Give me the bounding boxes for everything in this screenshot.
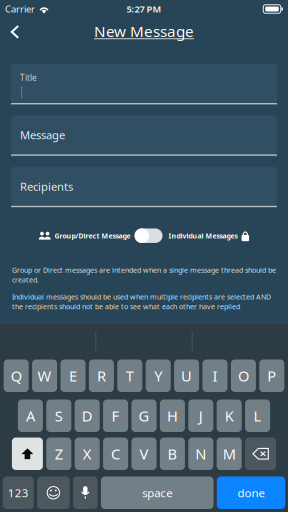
button[interactable]: M: [217, 437, 242, 470]
staticText: W: [38, 366, 52, 386]
staticText: C: [111, 444, 120, 464]
button[interactable]: 123: [3, 476, 34, 509]
staticText: Individual messages should be used when …: [12, 292, 271, 311]
button[interactable]: F: [103, 399, 128, 432]
button[interactable]: [37, 476, 70, 509]
staticText: M: [223, 444, 236, 464]
button[interactable]: A: [18, 399, 43, 432]
staticText: U: [181, 366, 192, 386]
button[interactable]: G: [131, 399, 156, 432]
button[interactable]: U: [174, 359, 199, 392]
staticText: Recipients: [20, 179, 73, 194]
staticText: D: [82, 406, 93, 426]
button[interactable]: K: [217, 399, 242, 432]
button[interactable]: done: [217, 476, 285, 509]
staticText: A: [26, 406, 35, 426]
button[interactable]: [245, 437, 276, 470]
staticText: T: [126, 366, 134, 386]
button[interactable]: S: [46, 399, 71, 432]
button[interactable]: L: [245, 399, 270, 432]
staticText: 123: [8, 485, 29, 500]
button[interactable]: T: [117, 359, 142, 392]
staticText: J: [199, 406, 203, 426]
staticText: Title: [20, 72, 37, 83]
button[interactable]: D: [75, 399, 100, 432]
staticText: space: [142, 485, 172, 500]
button[interactable]: C: [103, 437, 128, 470]
button[interactable]: Z: [46, 437, 71, 470]
staticText: Y: [154, 366, 162, 386]
staticText: Q: [11, 366, 22, 386]
staticText: R: [97, 366, 106, 386]
button[interactable]: I: [202, 359, 227, 392]
staticText: G: [138, 406, 149, 426]
button[interactable]: H: [160, 399, 185, 432]
button[interactable]: N: [188, 437, 213, 470]
button[interactable]: B: [160, 437, 185, 470]
staticText: N: [195, 444, 206, 464]
button[interactable]: P: [259, 359, 284, 392]
staticText: V: [139, 444, 148, 464]
staticText: X: [83, 444, 92, 464]
staticText: Individual Messages: [169, 231, 238, 240]
staticText: P: [267, 366, 276, 386]
staticText: B: [167, 444, 177, 464]
staticText: Group or Direct messages are intended wh…: [12, 265, 276, 284]
button[interactable]: X: [75, 437, 100, 470]
button[interactable]: E: [60, 359, 85, 392]
staticText: done: [238, 485, 265, 500]
button[interactable]: space: [101, 476, 213, 509]
staticText: 5:27 PM: [126, 3, 161, 15]
button[interactable]: Y: [146, 359, 171, 392]
button[interactable]: [12, 437, 43, 470]
staticText: F: [112, 406, 120, 426]
staticText: I: [212, 366, 217, 386]
staticText: Carrier: [5, 3, 35, 15]
staticText: L: [254, 406, 262, 426]
button[interactable]: J: [188, 399, 213, 432]
staticText: S: [55, 406, 63, 426]
staticText: Z: [55, 444, 63, 464]
staticText: E: [69, 366, 77, 386]
button[interactable]: R: [89, 359, 114, 392]
staticText: H: [167, 406, 178, 426]
staticText: Group/Direct Message: [55, 231, 131, 240]
staticText: O: [238, 366, 249, 386]
button[interactable]: Back: [1, 18, 29, 46]
button[interactable]: W: [32, 359, 57, 392]
button[interactable]: O: [231, 359, 256, 392]
staticText: Message: [20, 127, 65, 143]
button[interactable]: V: [131, 437, 156, 470]
staticText: K: [225, 406, 234, 426]
staticText: New Message: [94, 21, 194, 41]
button[interactable]: Message type toggle: [135, 228, 163, 243]
button[interactable]: [73, 476, 97, 509]
button[interactable]: Q: [4, 359, 29, 392]
